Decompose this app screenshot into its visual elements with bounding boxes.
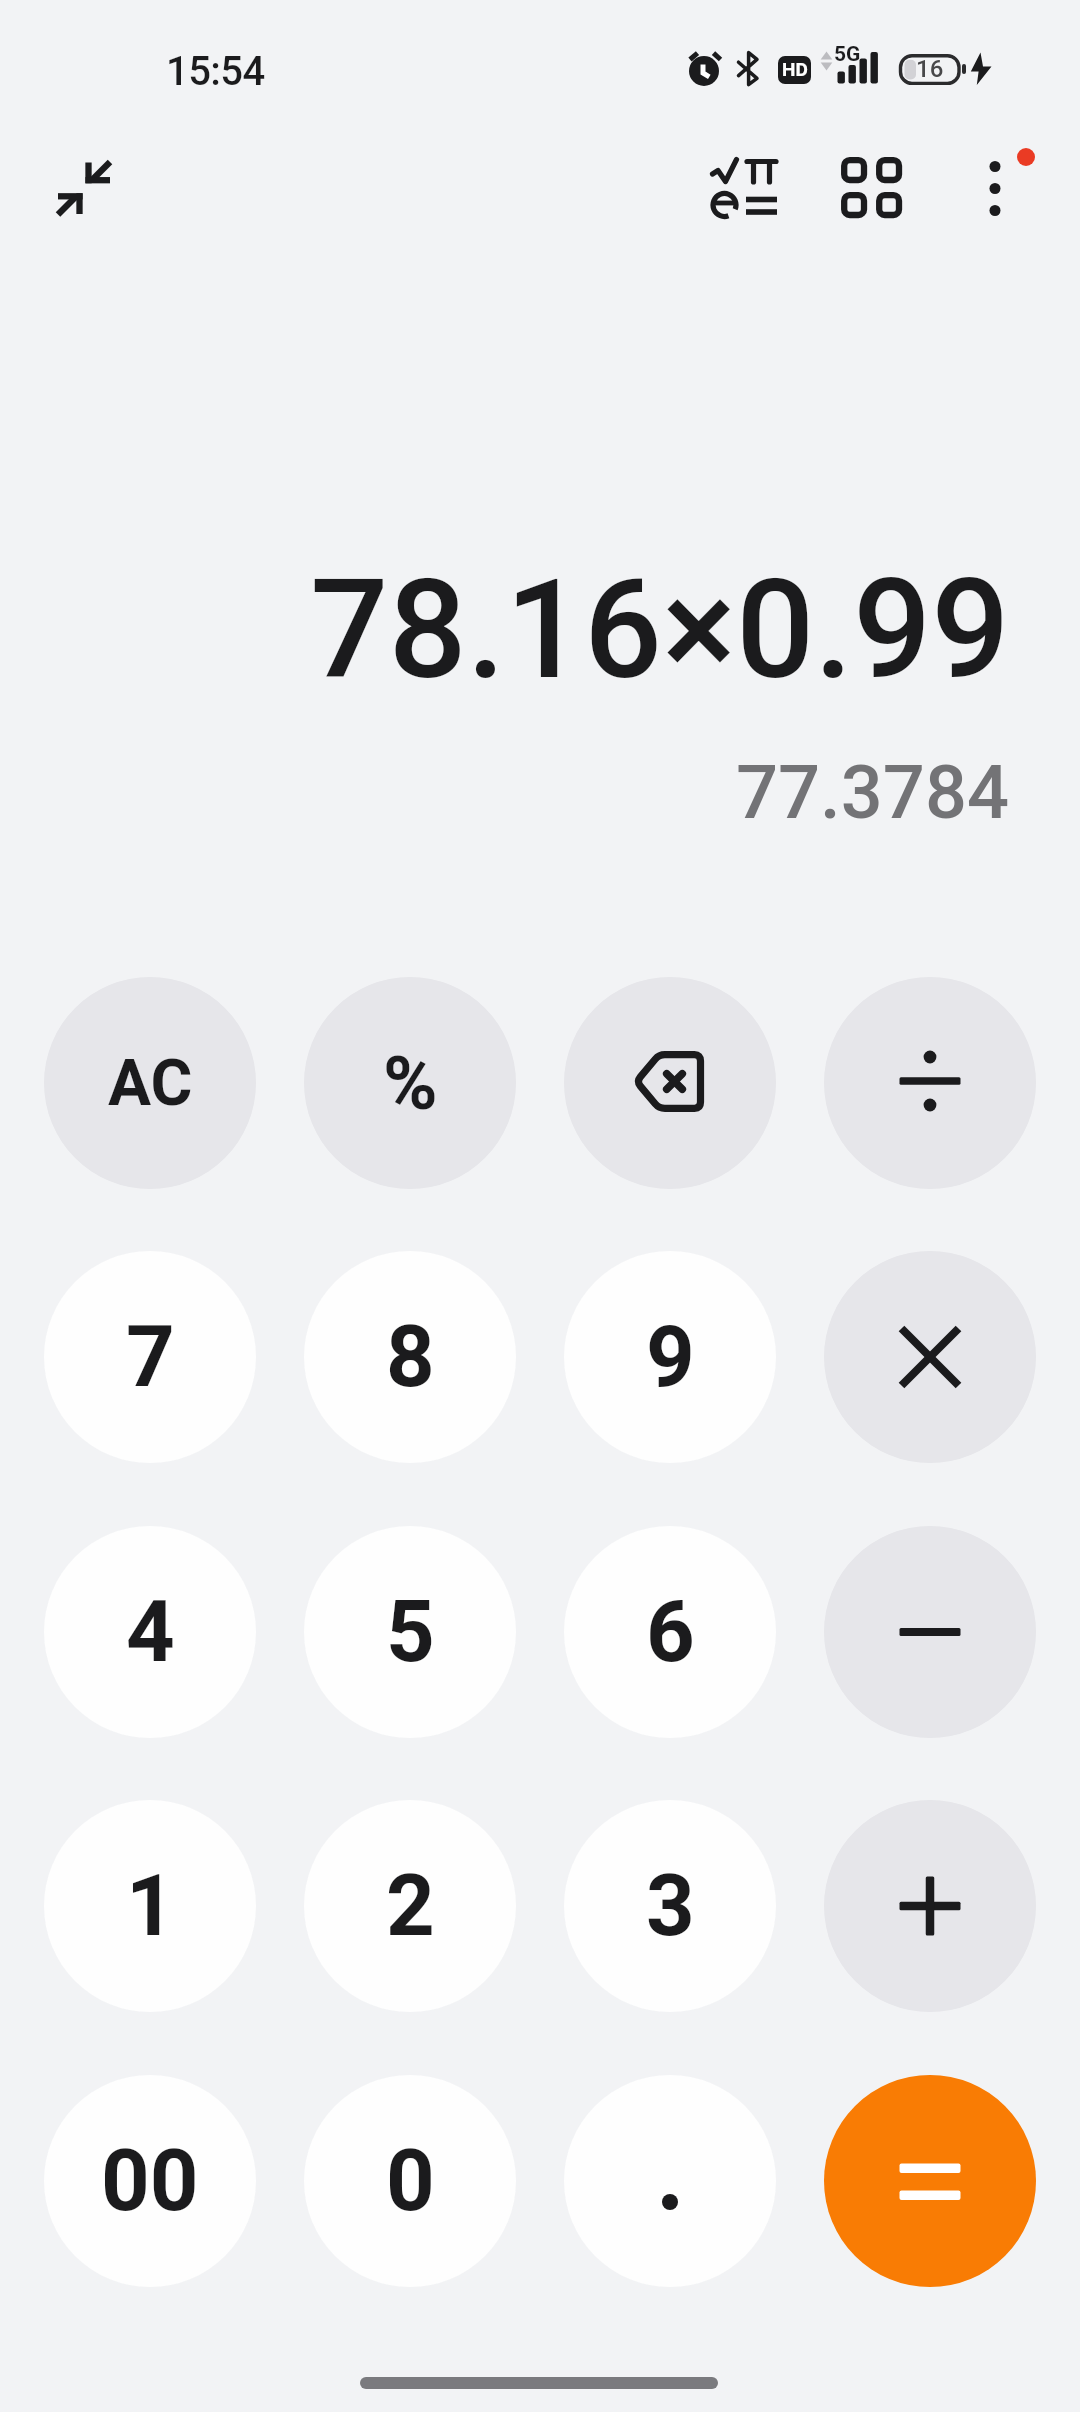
button[interactable] — [824, 977, 1036, 1189]
staticText: 8 — [386, 1307, 435, 1407]
staticText: 9 — [646, 1307, 695, 1407]
staticText: 78.16×0.99 — [310, 549, 1010, 711]
button[interactable] — [824, 2075, 1036, 2287]
button[interactable] — [44, 2075, 256, 2287]
button[interactable] — [44, 1800, 256, 2012]
button[interactable] — [304, 1251, 516, 1463]
button[interactable] — [824, 1251, 1036, 1463]
staticText: 4 — [126, 1582, 175, 1682]
staticText: 7 — [126, 1307, 175, 1407]
staticText: % — [383, 1040, 438, 1127]
staticText: 6 — [646, 1582, 695, 1682]
button[interactable] — [691, 146, 791, 246]
button[interactable] — [304, 977, 516, 1189]
button[interactable] — [304, 1526, 516, 1738]
button[interactable] — [304, 1800, 516, 2012]
staticText: 0 — [386, 2131, 435, 2231]
staticText: 3 — [646, 1856, 695, 1956]
staticText: 15:54 — [166, 48, 265, 95]
staticText: HD — [782, 58, 808, 80]
button[interactable] — [304, 2075, 516, 2287]
button[interactable] — [44, 1526, 256, 1738]
staticText: AC — [108, 1046, 193, 1121]
staticText: 5G — [834, 42, 861, 67]
button[interactable] — [564, 1251, 776, 1463]
button[interactable] — [564, 977, 776, 1189]
button[interactable] — [951, 146, 1039, 234]
button[interactable] — [564, 1800, 776, 2012]
staticText: 00 — [101, 2131, 199, 2231]
staticText: 1 — [126, 1856, 175, 1956]
button[interactable] — [44, 977, 256, 1189]
button[interactable] — [40, 146, 128, 234]
button[interactable] — [564, 2075, 776, 2287]
button[interactable] — [827, 146, 915, 234]
staticText: 2 — [386, 1856, 435, 1956]
button[interactable] — [824, 1800, 1036, 2012]
button[interactable] — [564, 1526, 776, 1738]
button[interactable] — [44, 1251, 256, 1463]
staticText: 5 — [386, 1582, 435, 1682]
staticText: 77.3784 — [736, 749, 1010, 836]
staticText: 16 — [916, 55, 944, 83]
button[interactable] — [824, 1526, 1036, 1738]
